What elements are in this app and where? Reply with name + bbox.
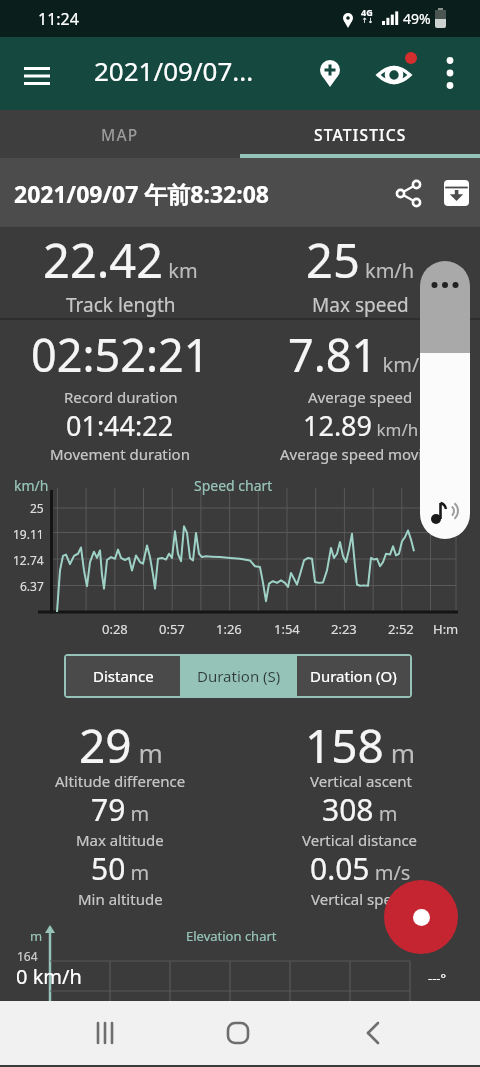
staticText: Duration (O) [310,666,397,686]
staticText: 25 km/h [306,228,415,292]
staticText: 12.74 [13,552,44,568]
button[interactable] [420,261,470,539]
button[interactable]: Duration (S) [182,656,295,696]
button[interactable]: STATISTICS [240,110,480,158]
staticText: Track length [66,292,176,318]
staticText: Max speed [312,292,409,318]
staticText: 7.81 km/h [288,324,432,385]
button[interactable] [426,49,474,97]
button[interactable]: Distance [66,656,180,696]
staticText: MAP [101,124,139,145]
button[interactable] [208,1003,268,1063]
staticText: Vertical distance [302,830,418,850]
staticText: 2021/09/07 午前8:32:08 [14,178,270,209]
staticText: 2:52 [388,620,414,638]
staticText: 0.05 m/s [310,848,411,889]
staticText: km/h [14,476,49,495]
staticText: 29 m [79,714,163,777]
staticText: m [30,927,43,945]
button[interactable] [343,1003,403,1063]
staticText: 12.89 km/h [303,407,419,444]
button[interactable] [370,49,420,99]
staticText: 01:44:22 [66,407,174,444]
staticText: 22.42 km [43,228,198,292]
button[interactable] [75,1003,135,1063]
staticText: 2021/09/07... [94,53,254,88]
staticText: 6.37 [20,578,44,594]
staticText: 164 [17,948,38,964]
staticText: Altitude difference [55,771,186,791]
staticText: Duration (S) [197,666,281,686]
staticText: Elevation chart [186,927,277,945]
button[interactable]: MAP [0,110,240,158]
button[interactable] [386,171,430,215]
staticText: 50 m [91,848,150,889]
staticText: 19.11 [13,526,44,542]
staticText: 25 [30,500,44,516]
staticText: Max altitude [76,830,164,850]
staticText: 0 km/h [16,963,82,990]
staticText: 02:52:21 [31,324,210,385]
staticText: Vertical ascent [310,771,412,791]
staticText: ---° [428,969,447,987]
button[interactable] [13,52,61,100]
staticText: Record duration [64,387,178,407]
staticText: Average speed moving [280,444,441,464]
staticText: 0:57 [159,620,185,638]
staticText: Min altitude [78,889,163,909]
staticText: H:m [433,620,459,638]
staticText: 1:26 [216,620,242,638]
staticText: 1:54 [274,620,300,638]
staticText: Average speed [308,387,413,407]
staticText: 11:24 [38,8,79,30]
staticText: STATISTICS [314,124,407,145]
staticText: Movement duration [50,444,190,464]
staticText: 0:28 [102,620,128,638]
button[interactable] [306,49,354,97]
staticText: 158 m [305,714,416,777]
staticText: 308 m [322,789,398,830]
staticText: 2:23 [331,620,357,638]
staticText: 79 m [91,789,150,830]
staticText: Distance [93,666,154,686]
staticText: Speed chart [194,476,273,495]
button[interactable] [384,880,458,954]
staticText: 4G [361,6,373,18]
button[interactable] [434,171,478,215]
button[interactable]: Duration (O) [297,656,410,696]
staticText: 49% [403,9,431,28]
staticText: Vertical speed [311,889,410,909]
staticText: ↑↓ [362,17,374,25]
